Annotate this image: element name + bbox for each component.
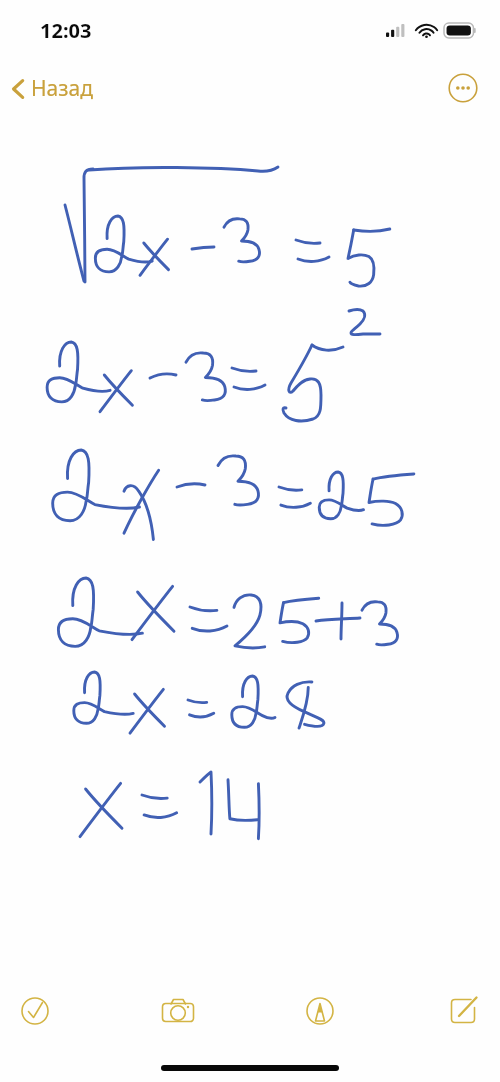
button[interactable]: Markup <box>297 975 343 1047</box>
button[interactable]: More options <box>448 73 478 103</box>
button[interactable]: Camera <box>155 975 201 1047</box>
staticText: Назад <box>31 74 93 103</box>
button[interactable]: Checklist <box>12 975 58 1047</box>
button[interactable]: Назад <box>0 68 105 109</box>
button[interactable]: Compose <box>440 975 486 1047</box>
staticText: 12:03 <box>40 17 92 44</box>
